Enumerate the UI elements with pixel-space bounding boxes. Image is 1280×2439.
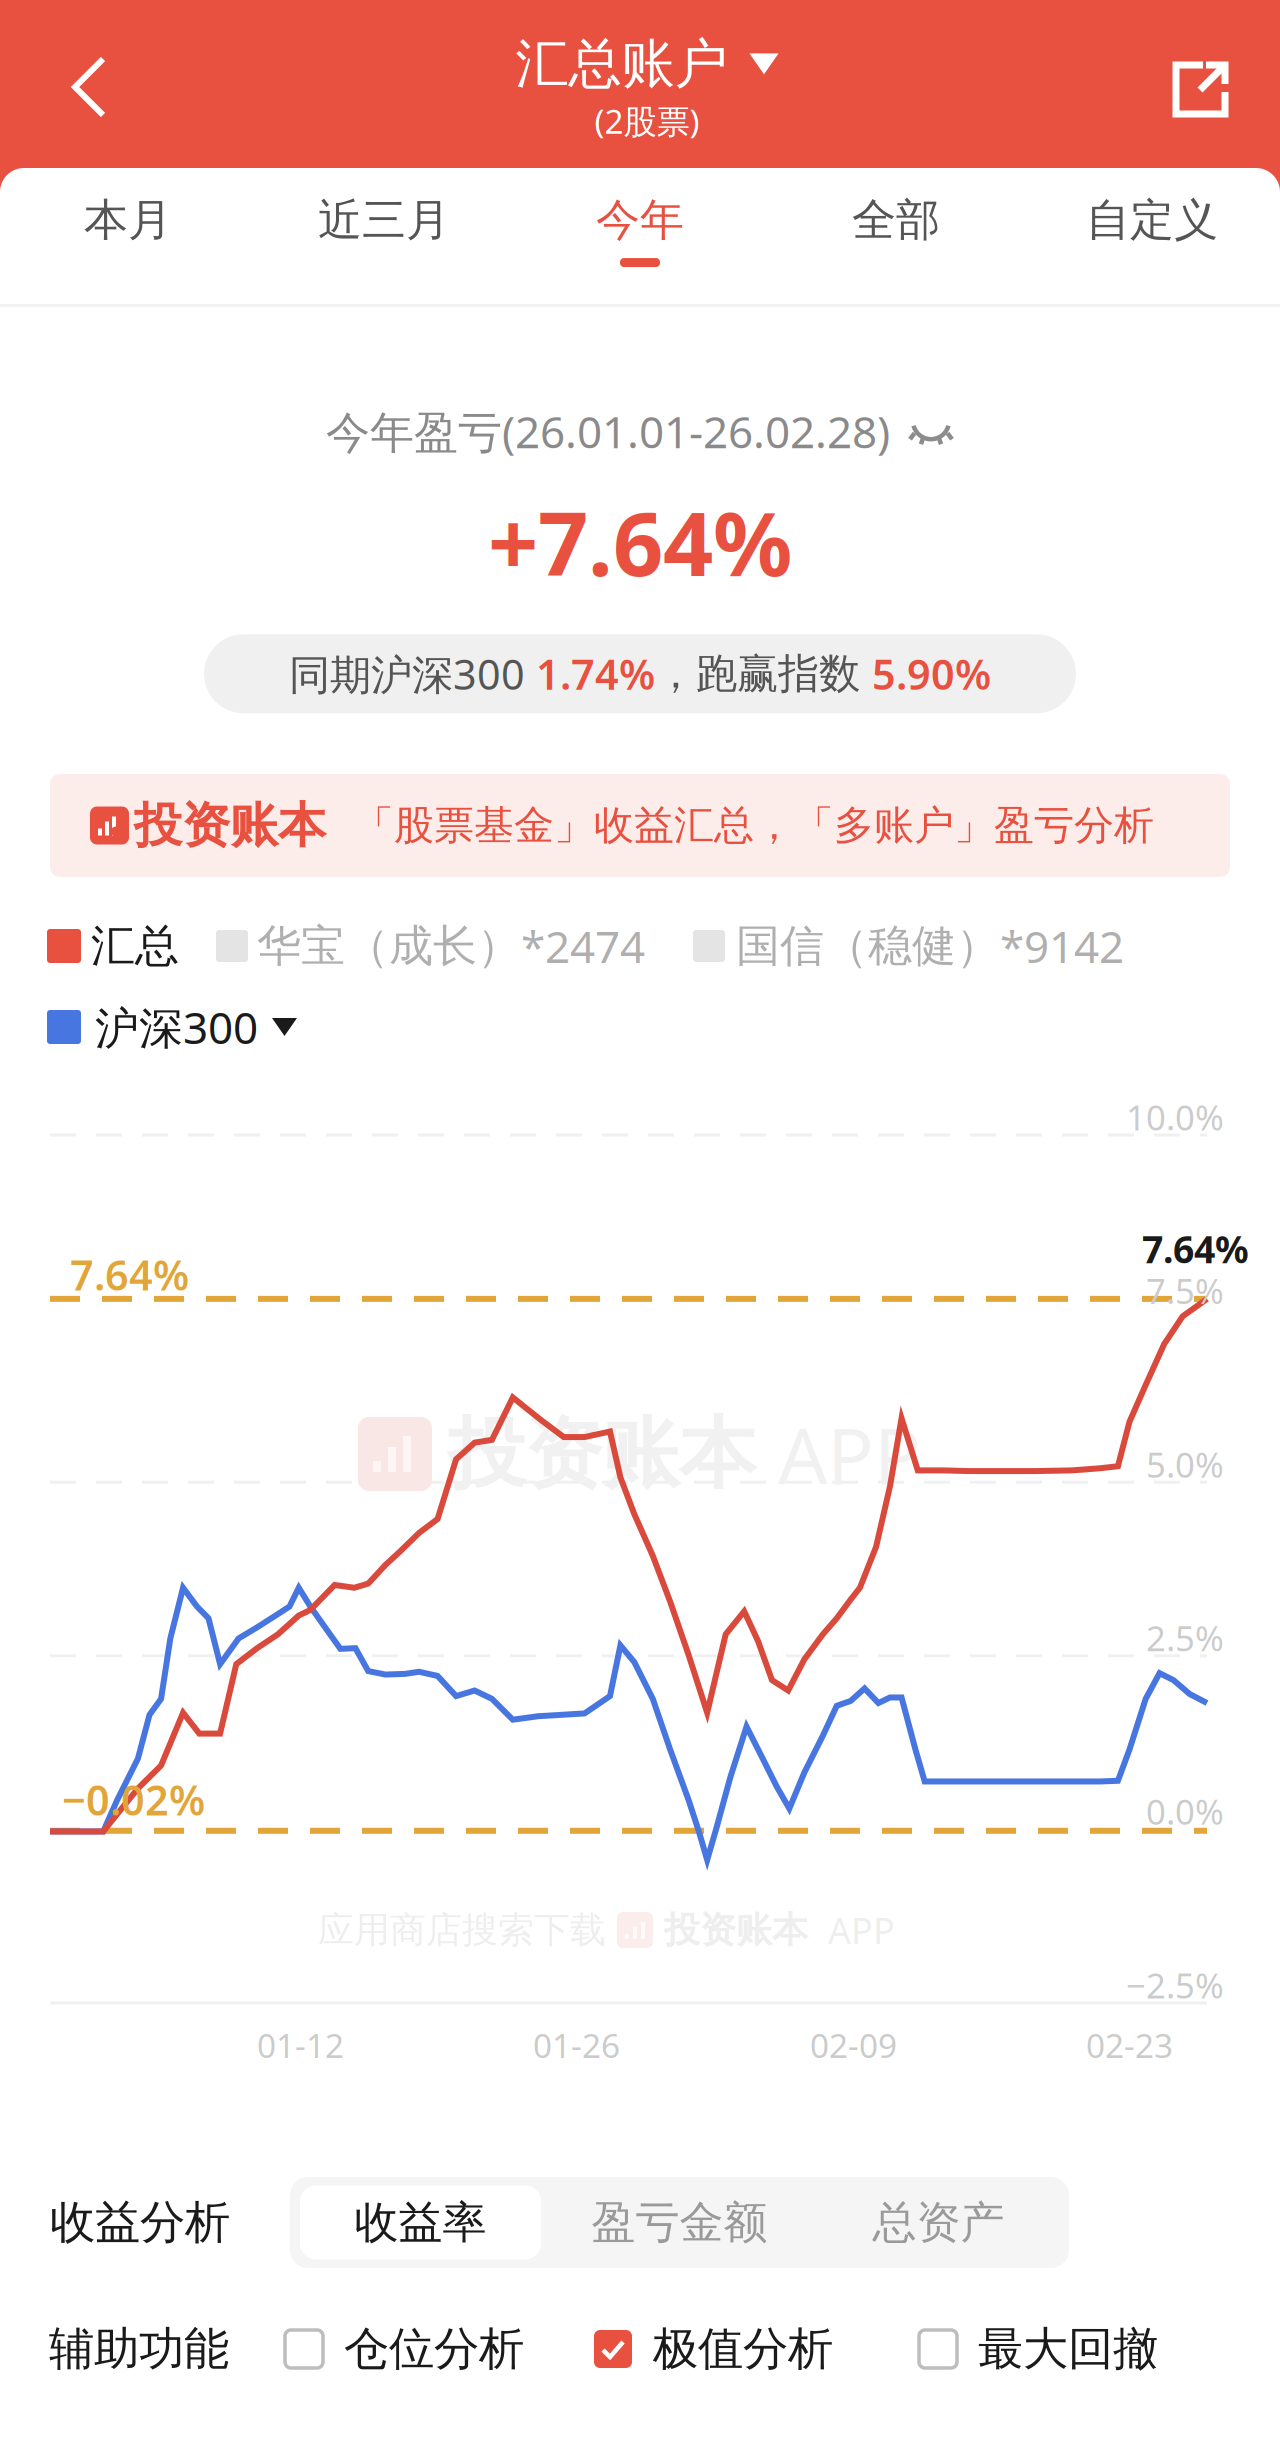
staticText: 仓位分析 bbox=[344, 2321, 524, 2377]
button[interactable]: 最大回撤 bbox=[919, 2317, 1158, 2381]
button[interactable]: 盈亏金额 bbox=[550, 2177, 809, 2268]
staticText: 7.64% bbox=[70, 1247, 189, 1302]
staticText: 1.74% bbox=[536, 646, 655, 701]
staticText: APP bbox=[819, 1906, 895, 1954]
button[interactable]: 今年 bbox=[512, 168, 768, 304]
staticText: *2474 bbox=[521, 917, 645, 975]
staticText: APP bbox=[778, 1403, 921, 1505]
staticText: 2.5% bbox=[1146, 1615, 1224, 1661]
staticText: +7.64% bbox=[488, 483, 792, 600]
staticText: 收益率 bbox=[354, 2195, 486, 2249]
button[interactable]: 近三月 bbox=[256, 168, 512, 304]
staticText: 01-12 bbox=[257, 2023, 344, 2067]
button[interactable]: 仓位分析 bbox=[285, 2317, 524, 2381]
staticText: 辅助功能 bbox=[49, 2321, 229, 2377]
staticText: 汇总账户 bbox=[515, 31, 727, 97]
staticText: −2.5% bbox=[1126, 1962, 1224, 2008]
staticText: ，跑赢指数 bbox=[655, 648, 872, 699]
staticText: 投资账本 bbox=[134, 796, 326, 855]
button[interactable]: 投资账本 bbox=[50, 774, 1230, 877]
staticText: 投资账本 bbox=[653, 1908, 819, 1952]
button[interactable]: 分享 bbox=[1116, 10, 1280, 164]
staticText: 全部 bbox=[852, 193, 940, 247]
staticText: 10.0% bbox=[1126, 1094, 1224, 1140]
staticText: 「股票基金」收益汇总，「多账户」盈亏分析 bbox=[354, 801, 1154, 850]
staticText: 本月 bbox=[84, 193, 172, 247]
staticText: 同期沪深300 bbox=[289, 646, 536, 701]
staticText: 华宝（成长） bbox=[257, 919, 521, 973]
staticText: 5.0% bbox=[1146, 1441, 1224, 1487]
staticText: 7.64% bbox=[1142, 1224, 1249, 1274]
staticText: 国信（稳健） bbox=[736, 919, 1000, 973]
staticText: 01-26 bbox=[533, 2023, 620, 2067]
staticText: 最大回撤 bbox=[978, 2321, 1158, 2377]
staticText: 汇总 bbox=[91, 919, 179, 973]
button[interactable]: 全部 bbox=[768, 168, 1024, 304]
staticText: 应用商店搜索下载 bbox=[318, 1908, 617, 1952]
staticText: 极值分析 bbox=[653, 2321, 833, 2377]
staticText: 今年盈亏(26.01.01-26.02.28) bbox=[326, 402, 890, 460]
staticText: 盈亏金额 bbox=[591, 2195, 767, 2249]
button[interactable]: 本月 bbox=[0, 168, 256, 304]
button[interactable]: 总资产 bbox=[809, 2177, 1068, 2268]
staticText: 今年 bbox=[596, 193, 684, 247]
staticText: 7.5% bbox=[1146, 1268, 1224, 1314]
staticText: 沪深300 bbox=[95, 998, 258, 1056]
button[interactable]: 自定义 bbox=[1024, 168, 1280, 304]
staticText: 02-23 bbox=[1086, 2023, 1173, 2067]
staticText: 投资账本 bbox=[448, 1406, 756, 1501]
staticText: −0.02% bbox=[62, 1772, 205, 1827]
staticText: *9142 bbox=[1000, 917, 1124, 975]
staticText: 总资产 bbox=[872, 2195, 1004, 2249]
staticText: 自定义 bbox=[1086, 193, 1218, 247]
button[interactable]: 极值分析 bbox=[594, 2317, 833, 2381]
staticText: 0.0% bbox=[1146, 1788, 1224, 1834]
staticText: 02-09 bbox=[810, 2023, 897, 2067]
staticText: 近三月 bbox=[318, 193, 450, 247]
staticText: 5.90% bbox=[872, 646, 991, 701]
staticText: (2股票) bbox=[594, 99, 699, 143]
button[interactable]: 返回 bbox=[0, 12, 178, 162]
staticText: 收益分析 bbox=[50, 2195, 230, 2250]
button[interactable]: 收益率 bbox=[291, 2177, 550, 2268]
